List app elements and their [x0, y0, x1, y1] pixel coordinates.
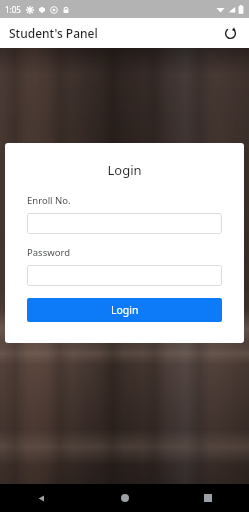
staticText: Password [27, 246, 70, 259]
button[interactable]: Login [27, 298, 222, 322]
button[interactable]: Recent apps [166, 484, 249, 512]
button[interactable]: Refresh [219, 22, 241, 44]
staticText: Student's Panel [9, 25, 98, 41]
button[interactable] [27, 265, 222, 286]
button[interactable]: Back [0, 484, 83, 512]
button[interactable]: Home [83, 484, 166, 512]
staticText: Enroll No. [27, 194, 71, 207]
staticText: Login [111, 303, 139, 317]
button[interactable] [27, 213, 222, 234]
staticText: Login [27, 161, 222, 179]
staticText: 1:05 [5, 4, 21, 15]
